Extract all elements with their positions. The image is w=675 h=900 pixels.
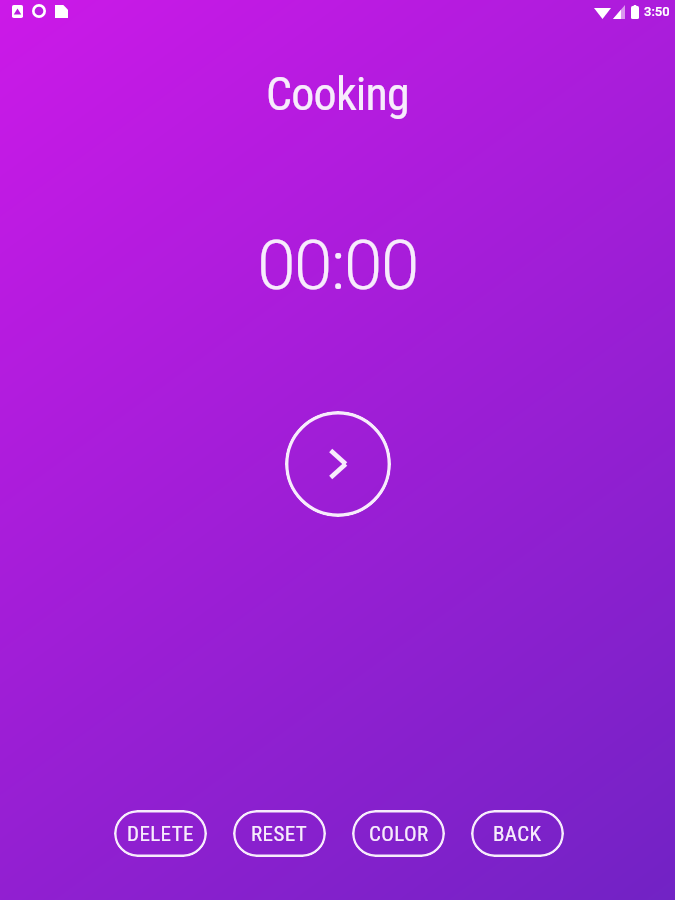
staticText: 00:00: [0, 225, 675, 306]
staticText: BACK: [493, 822, 542, 847]
button[interactable]: Start timer: [285, 411, 391, 517]
staticText: RESET: [251, 822, 308, 847]
staticText: COLOR: [369, 822, 429, 847]
button[interactable]: DELETE: [114, 810, 207, 857]
button[interactable]: COLOR: [352, 810, 445, 857]
button[interactable]: RESET: [233, 810, 326, 857]
staticText: DELETE: [127, 822, 194, 847]
staticText: Cooking: [0, 67, 675, 121]
staticText: 3:50: [644, 4, 670, 19]
button[interactable]: BACK: [471, 810, 564, 857]
